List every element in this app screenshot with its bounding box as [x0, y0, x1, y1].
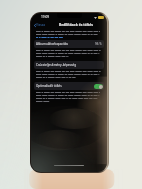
button[interactable]: Optimalizált töltés: [34, 82, 104, 90]
staticText: Vissza: [36, 23, 46, 27]
staticText: Beállítások és töltés: [59, 22, 94, 27]
staticText: 19:09: [41, 15, 50, 19]
button[interactable]: Vissza: [34, 23, 46, 27]
button[interactable]: Optimalizált töltés kapcsoló: [94, 84, 103, 89]
staticText: Akkumulátorkapacitás: [36, 42, 68, 46]
button[interactable]: Csúcsteljesítmény-képesség: [34, 61, 104, 69]
staticText: 96 %: [95, 42, 102, 46]
staticText: Csúcsteljesítmény-képesség: [36, 63, 77, 67]
staticText: Optimalizált töltés: [36, 84, 62, 88]
button[interactable]: Akkumulátorkapacitás: [34, 40, 104, 48]
button[interactable]: További információ: [36, 37, 64, 38]
